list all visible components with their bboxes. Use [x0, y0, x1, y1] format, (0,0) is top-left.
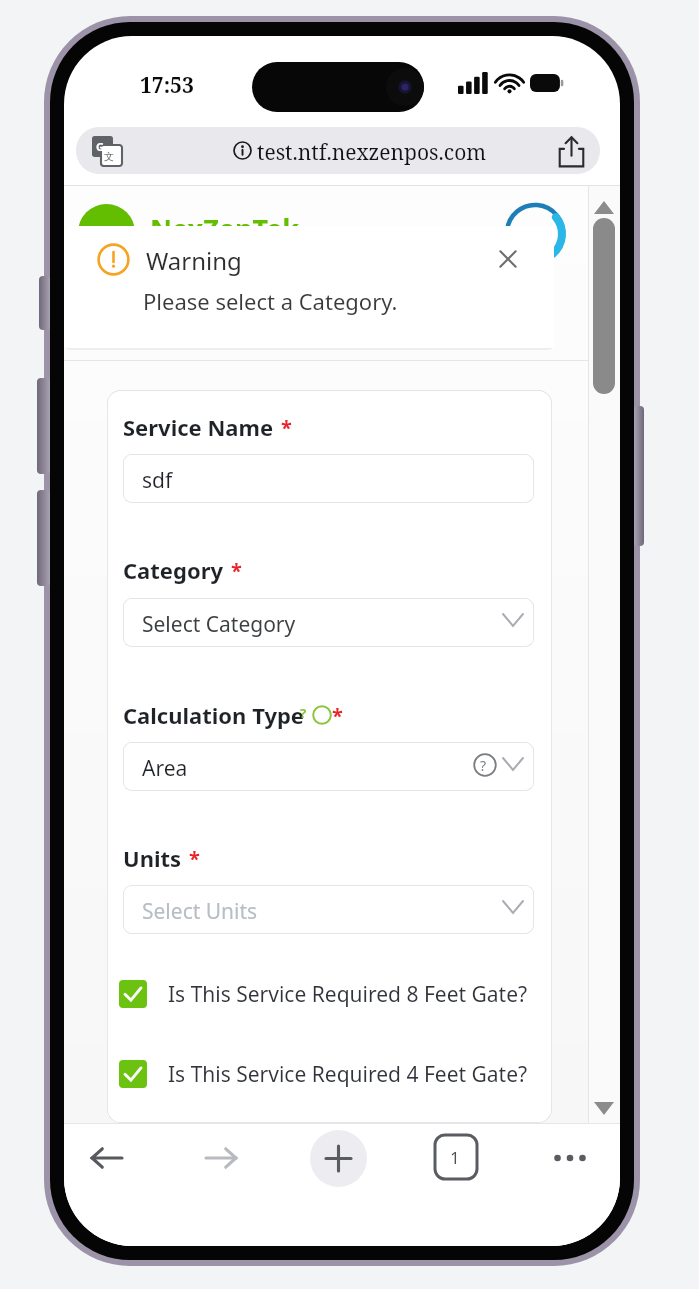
staticText: * — [332, 702, 343, 729]
button[interactable]: More — [544, 1132, 596, 1184]
staticText: 17:53 — [140, 71, 194, 100]
button[interactable]: Forward — [195, 1132, 247, 1184]
staticText: 文 — [104, 150, 114, 163]
staticText: Service Name — [123, 412, 274, 442]
button[interactable]: Is This Service Required 8 Feet Gate? — [119, 975, 528, 1013]
staticText: G — [96, 139, 104, 154]
staticText: Category — [123, 555, 224, 585]
staticText: Units — [123, 843, 182, 873]
button[interactable]: Close — [492, 243, 524, 275]
staticText: ? — [480, 756, 487, 775]
button[interactable] — [123, 885, 534, 934]
button[interactable]: Share — [556, 135, 587, 168]
staticText: 1 — [450, 1146, 460, 1169]
staticText: Calculation Type — [123, 700, 304, 730]
staticText: Warning — [146, 244, 242, 277]
button[interactable]: Tabs — [435, 1135, 477, 1179]
button[interactable]: New Tab — [310, 1130, 367, 1187]
button[interactable]: Is This Service Required 4 Feet Gate? — [119, 1055, 528, 1093]
staticText: sdf — [142, 466, 173, 495]
button[interactable] — [123, 742, 534, 791]
staticText: Area — [142, 754, 188, 783]
button[interactable]: Back — [81, 1132, 133, 1184]
staticText: Is This Service Required 8 Feet Gate? — [168, 980, 528, 1009]
staticText: ? — [300, 704, 307, 722]
button[interactable] — [123, 598, 534, 647]
button[interactable] — [123, 454, 534, 503]
staticText: Select Units — [142, 897, 258, 926]
staticText: Please select a Category. — [143, 286, 398, 316]
staticText: * — [231, 557, 242, 584]
button[interactable]: Warning — [64, 226, 554, 350]
button[interactable]: Translate — [92, 136, 122, 166]
staticText: NexZenTek — [150, 210, 299, 247]
staticText: Is This Service Required 4 Feet Gate? — [168, 1060, 528, 1089]
staticText: * — [281, 414, 292, 441]
staticText: test.ntf.nexzenpos.com — [257, 138, 487, 167]
button[interactable] — [76, 127, 600, 174]
staticText: * — [189, 845, 200, 872]
staticText: Select Category — [142, 610, 296, 639]
